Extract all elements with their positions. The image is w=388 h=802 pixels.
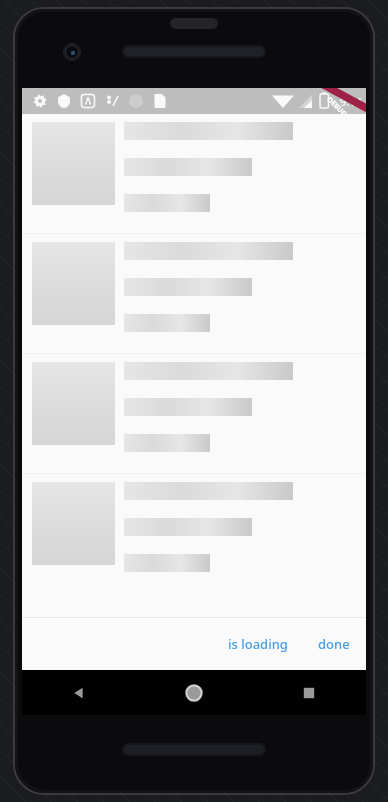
button[interactable] <box>22 474 366 593</box>
button[interactable]: Back <box>22 670 136 715</box>
button[interactable]: Home <box>136 670 251 715</box>
button[interactable]: done <box>308 628 360 660</box>
staticText: DEBUG <box>324 95 349 119</box>
staticText: 9:14 <box>340 94 362 109</box>
staticText: is loading <box>228 635 288 653</box>
button[interactable]: Recent apps <box>251 670 366 715</box>
button[interactable] <box>22 114 366 233</box>
button[interactable] <box>22 234 366 353</box>
button[interactable] <box>22 354 366 473</box>
staticText: done <box>318 635 350 653</box>
button[interactable]: is loading <box>218 628 298 660</box>
